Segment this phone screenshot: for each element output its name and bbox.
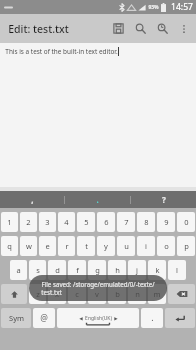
button[interactable]: n: [128, 284, 146, 304]
staticText: 93%: [148, 4, 159, 11]
button[interactable]: Search: [129, 14, 151, 43]
staticText: g: [95, 265, 100, 275]
staticText: This is a test of the built-in text edit…: [5, 47, 118, 56]
staticText: @: [40, 312, 48, 324]
button[interactable]: Enter: [165, 308, 195, 328]
button[interactable]: Space: [57, 308, 139, 328]
staticText: 9: [164, 217, 169, 227]
button[interactable]: 1: [1, 212, 18, 232]
button[interactable]: a: [10, 260, 27, 280]
staticText: f: [76, 265, 79, 275]
staticText: ,: [31, 194, 34, 205]
button[interactable]: Search next: [151, 14, 173, 43]
button[interactable]: d: [48, 260, 66, 280]
button[interactable]: m: [148, 284, 166, 304]
button[interactable]: 8: [137, 212, 155, 232]
button[interactable]: More options: [173, 14, 195, 43]
button[interactable]: p: [177, 236, 195, 256]
staticText: r: [65, 241, 69, 251]
button[interactable]: 0: [177, 212, 195, 232]
button[interactable]: e: [39, 236, 56, 256]
button[interactable]: q: [1, 236, 18, 256]
button[interactable]: u: [117, 236, 135, 256]
button[interactable]: 6: [97, 212, 115, 232]
staticText: q: [7, 241, 12, 251]
staticText: h: [115, 265, 120, 275]
button[interactable]: Backspace: [168, 284, 195, 304]
button[interactable]: x: [48, 284, 66, 304]
staticText: u: [124, 241, 129, 251]
staticText: s: [36, 265, 40, 275]
staticText: l: [176, 265, 178, 275]
button[interactable]: v: [88, 284, 106, 304]
staticText: n: [135, 289, 140, 299]
staticText: 1: [7, 217, 12, 227]
button[interactable]: k: [148, 260, 166, 280]
button[interactable]: .: [65, 191, 130, 208]
staticText: test.txt: [41, 288, 62, 296]
staticText: e: [45, 241, 50, 251]
button[interactable]: 3: [39, 212, 56, 232]
staticText: 0: [184, 217, 189, 227]
staticText: ◀: [79, 316, 83, 321]
staticText: b: [115, 289, 120, 299]
button[interactable]: Emoji: [33, 308, 55, 328]
staticText: 8: [144, 217, 149, 227]
staticText: Sym: [9, 313, 24, 323]
button[interactable]: l: [168, 260, 186, 280]
button[interactable]: 4: [58, 212, 75, 232]
staticText: a: [16, 265, 21, 275]
button[interactable]: y: [97, 236, 115, 256]
button[interactable]: z: [29, 284, 46, 304]
staticText: 4: [64, 217, 69, 227]
button[interactable]: ,: [0, 191, 64, 208]
staticText: d: [55, 265, 60, 275]
button[interactable]: 7: [117, 212, 135, 232]
staticText: w: [26, 241, 32, 251]
staticText: ▶: [114, 316, 118, 321]
staticText: 7: [124, 217, 129, 227]
staticText: m: [153, 289, 161, 299]
button[interactable]: h: [108, 260, 126, 280]
staticText: o: [164, 241, 169, 251]
button[interactable]: r: [58, 236, 75, 256]
button[interactable]: j: [128, 260, 146, 280]
button[interactable]: Period: [141, 308, 163, 328]
button[interactable]: Save: [107, 14, 129, 43]
staticText: z: [36, 289, 40, 299]
button[interactable]: Shift: [1, 284, 27, 304]
button[interactable]: 5: [77, 212, 95, 232]
staticText: ?: [162, 194, 166, 205]
staticText: c: [75, 289, 79, 299]
staticText: File saved: /storage/emulated/0/-texte/: [41, 280, 155, 288]
button[interactable]: 9: [157, 212, 175, 232]
staticText: .: [96, 194, 99, 205]
button[interactable]: s: [29, 260, 46, 280]
staticText: 5: [84, 217, 89, 227]
staticText: v: [95, 289, 99, 299]
button[interactable]: t: [77, 236, 95, 256]
staticText: 6: [104, 217, 109, 227]
button[interactable]: 2: [20, 212, 37, 232]
button[interactable]: b: [108, 284, 126, 304]
staticText: English(UK): [85, 315, 112, 322]
staticText: x: [55, 289, 59, 299]
button[interactable]: w: [20, 236, 37, 256]
staticText: p: [184, 241, 189, 251]
button[interactable]: ?: [131, 191, 196, 208]
staticText: 3: [45, 217, 50, 227]
button[interactable]: c: [68, 284, 86, 304]
button[interactable]: g: [88, 260, 106, 280]
staticText: 2: [26, 217, 31, 227]
button[interactable]: i: [137, 236, 155, 256]
staticText: 14:57: [171, 1, 193, 13]
staticText: i: [145, 241, 147, 251]
button[interactable]: f: [68, 260, 86, 280]
staticText: Edit: test.txt: [8, 22, 69, 36]
staticText: y: [104, 241, 108, 251]
button[interactable]: o: [157, 236, 175, 256]
staticText: .: [151, 312, 154, 324]
button[interactable]: Sym: [1, 308, 31, 328]
staticText: j: [136, 265, 138, 275]
staticText: t: [85, 241, 88, 251]
